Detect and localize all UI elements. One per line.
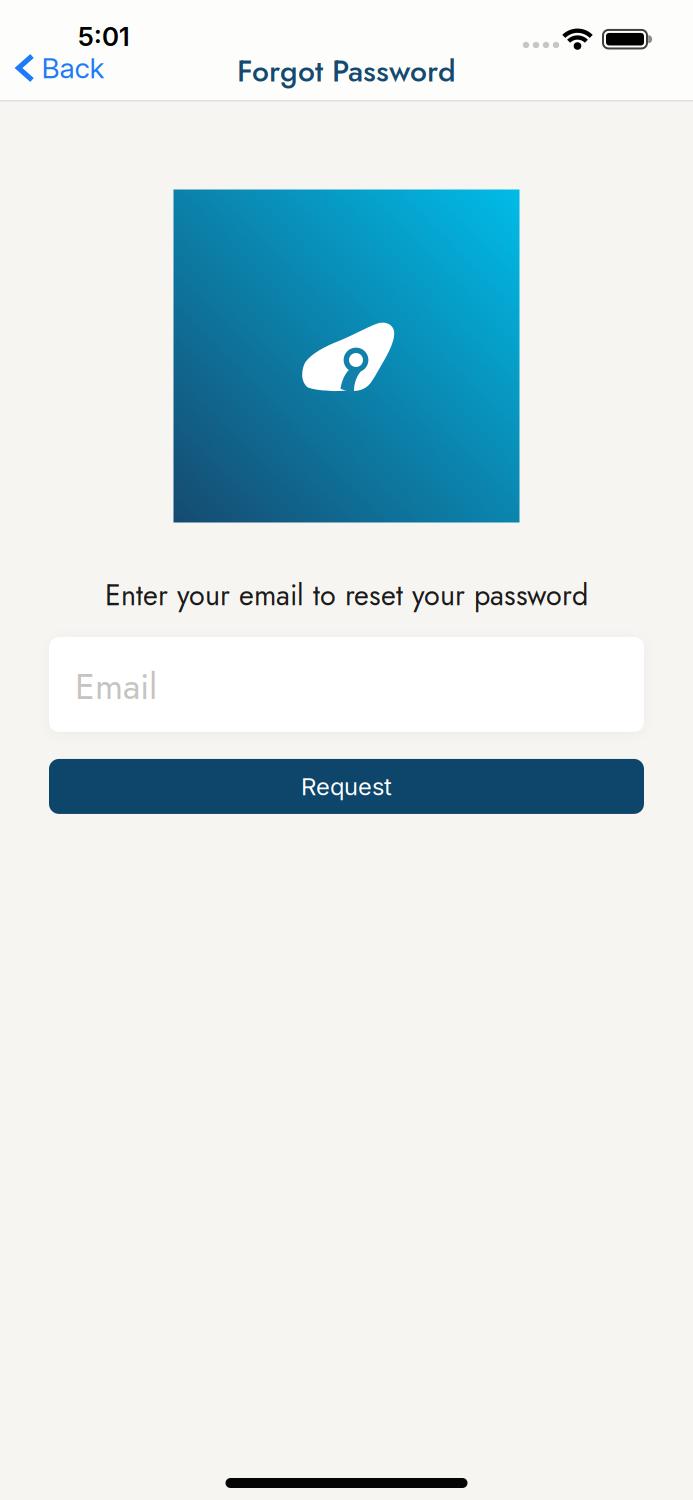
staticText: Back — [41, 51, 104, 85]
staticText: Forgot Password — [237, 49, 456, 93]
staticText: Email — [75, 660, 157, 712]
staticText: 5:01 — [78, 21, 130, 52]
button[interactable]: Back — [7, 45, 119, 91]
button[interactable]: Email — [49, 637, 644, 732]
staticText: Enter your email to reset your password — [105, 574, 588, 616]
button[interactable]: Request — [49, 759, 644, 814]
staticText: Request — [301, 772, 392, 801]
